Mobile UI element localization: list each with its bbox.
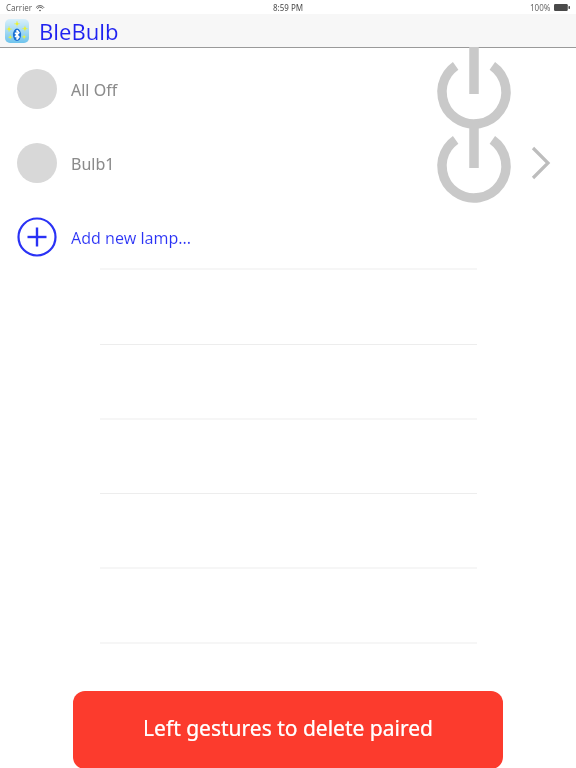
- button[interactable]: Add new lamp...: [0, 204, 576, 269]
- staticText: Add new lamp...: [71, 227, 192, 249]
- staticText: BleBulb: [39, 16, 119, 46]
- button[interactable]: Bulb1: [0, 126, 576, 200]
- staticText: Carrier: [6, 2, 33, 13]
- staticText: 100%: [530, 2, 551, 13]
- staticText: All Off: [71, 79, 118, 101]
- button[interactable]: Left gestures to delete paired: [73, 691, 503, 768]
- staticText: 8:59 PM: [273, 2, 304, 13]
- staticText: Left gestures to delete paired: [143, 714, 433, 743]
- button[interactable]: All Off: [0, 48, 576, 126]
- staticText: Bulb1: [71, 153, 115, 175]
